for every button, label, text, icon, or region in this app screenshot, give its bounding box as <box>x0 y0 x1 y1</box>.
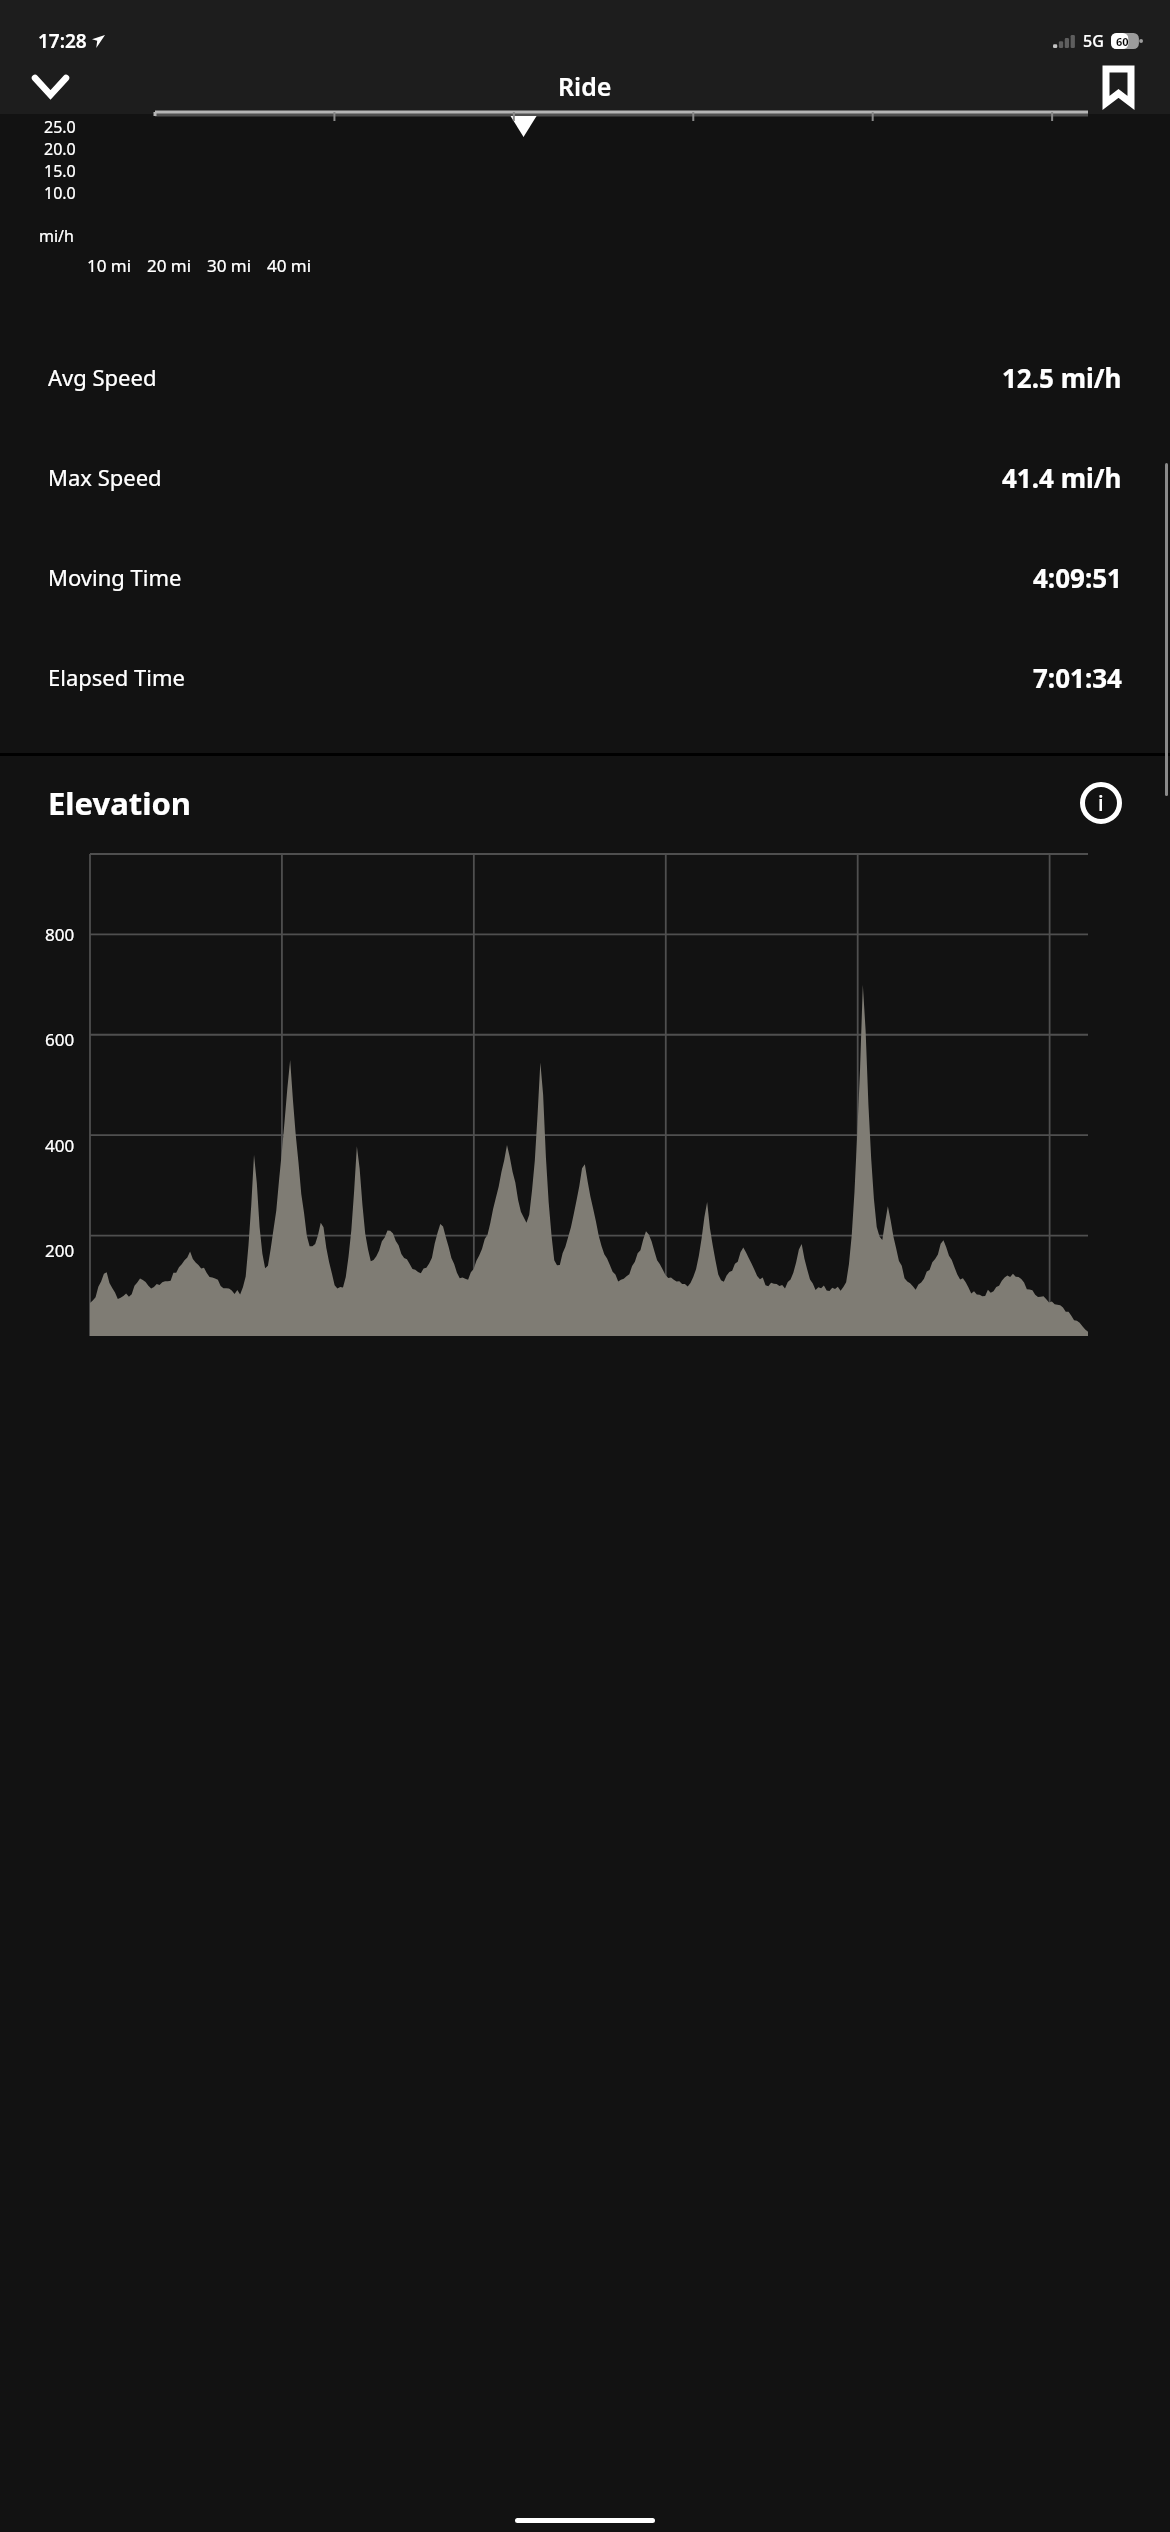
staticText: i <box>1098 789 1104 818</box>
staticText: 20 mi <box>147 254 192 277</box>
staticText: 41.4 mi/h <box>1002 460 1122 495</box>
staticText: 60 <box>1116 34 1129 49</box>
staticText: 15.0 <box>44 160 76 182</box>
staticText: Moving Time <box>48 562 182 592</box>
staticText: Ride <box>558 69 612 103</box>
button[interactable]: Info <box>1080 782 1122 824</box>
staticText: 30 mi <box>207 254 252 277</box>
staticText: 10 mi <box>87 254 132 277</box>
staticText: mi/h <box>39 225 74 247</box>
button[interactable]: Bookmark <box>1088 58 1148 114</box>
staticText: 200 <box>45 1239 75 1262</box>
staticText: 400 <box>45 1134 75 1157</box>
button[interactable]: Avg Speed <box>0 327 1170 427</box>
staticText: Elapsed Time <box>48 662 185 692</box>
staticText: 20.0 <box>44 138 76 160</box>
staticText: 10.0 <box>44 182 76 204</box>
staticText: 800 <box>45 923 75 946</box>
staticText: 7:01:34 <box>1033 660 1122 695</box>
staticText: 40 mi <box>267 254 312 277</box>
button[interactable]: Collapse <box>20 58 80 114</box>
staticText: 600 <box>45 1028 75 1051</box>
button[interactable]: Elapsed Time <box>0 627 1170 727</box>
staticText: 4:09:51 <box>1033 560 1122 595</box>
staticText: Elevation <box>48 782 192 824</box>
button[interactable]: Moving Time <box>0 527 1170 627</box>
staticText: 25.0 <box>44 116 76 138</box>
staticText: 12.5 mi/h <box>1002 360 1122 395</box>
staticText: Max Speed <box>48 462 162 492</box>
staticText: 17:28 <box>38 28 87 54</box>
staticText: Avg Speed <box>48 362 157 392</box>
staticText: 5G <box>1083 30 1104 52</box>
button[interactable]: Max Speed <box>0 427 1170 527</box>
